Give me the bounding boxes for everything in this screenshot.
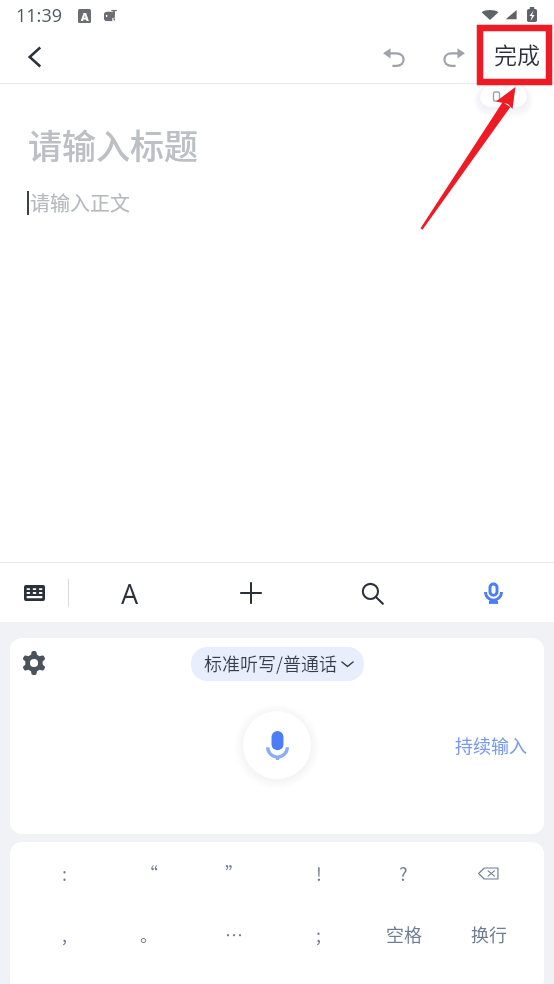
button[interactable]: ? (361, 842, 446, 904)
staticText: ? (399, 860, 408, 886)
staticText: 11:39 (16, 3, 63, 28)
button[interactable]: 换行 (446, 904, 531, 963)
button[interactable]: Keyboard (0, 563, 68, 622)
staticText: A (121, 575, 139, 612)
staticText: 。 (140, 921, 158, 947)
button[interactable]: Add (223, 565, 279, 621)
button[interactable]: 持续输入 (453, 727, 529, 763)
staticText: “ (140, 860, 158, 886)
button[interactable]: Search (344, 565, 400, 621)
staticText: , (62, 921, 68, 947)
staticText: ! (316, 860, 322, 886)
staticText: 换行 (471, 921, 507, 947)
button[interactable]: 完成 (488, 35, 546, 80)
button[interactable]: “ (107, 842, 191, 904)
staticText: : (62, 860, 68, 886)
staticText: … (225, 921, 243, 947)
button[interactable]: , (23, 904, 107, 963)
staticText: 请输入标题 (28, 120, 198, 169)
staticText: 请输入正文 (30, 188, 130, 217)
staticText: A (81, 9, 89, 23)
button[interactable]: Text format (102, 565, 158, 621)
button[interactable]: ; (276, 904, 361, 963)
staticText: ; (316, 921, 322, 947)
button[interactable]: Voice toggle (473, 79, 534, 114)
staticText: ” (225, 860, 243, 886)
button[interactable]: : (23, 842, 107, 904)
button[interactable]: Voice input (465, 565, 521, 621)
button[interactable]: Redo (430, 34, 476, 80)
button[interactable]: ” (191, 842, 276, 904)
button[interactable]: 标准听写/普通话 (191, 647, 364, 681)
button[interactable]: ! (276, 842, 361, 904)
button[interactable]: Back (12, 34, 58, 80)
staticText: 完成 (494, 37, 540, 70)
staticText: 空格 (386, 921, 422, 947)
button[interactable]: 空格 (361, 904, 446, 963)
button[interactable]: 。 (107, 904, 191, 963)
staticText: 标准听写/普通话 (204, 650, 338, 676)
button[interactable]: Undo (372, 34, 418, 80)
button[interactable]: Settings (16, 645, 52, 681)
button[interactable]: … (191, 904, 276, 963)
button[interactable]: Record (243, 711, 311, 779)
staticText: 持续输入 (455, 732, 527, 758)
button[interactable]: Backspace (446, 842, 531, 904)
